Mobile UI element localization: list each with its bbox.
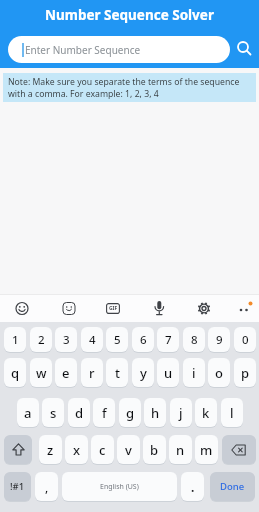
staticText: v xyxy=(125,441,132,459)
button[interactable]: 3 xyxy=(55,327,77,352)
staticText: Enter Number Sequence xyxy=(25,43,141,57)
button[interactable]: 6 xyxy=(132,327,154,352)
staticText: l xyxy=(230,404,234,422)
button[interactable] xyxy=(236,40,253,57)
staticText: q xyxy=(11,364,20,382)
button[interactable]: 4 xyxy=(81,327,103,352)
staticText: . xyxy=(191,479,195,495)
button[interactable]: 9 xyxy=(208,327,230,352)
button[interactable]: 8 xyxy=(183,327,205,352)
button[interactable]: s xyxy=(42,398,64,427)
button[interactable]: 2 xyxy=(30,327,52,352)
staticText: , xyxy=(45,479,49,495)
button[interactable]: q xyxy=(4,358,26,387)
button[interactable]: , xyxy=(35,472,58,501)
button[interactable]: 5 xyxy=(106,327,128,352)
button[interactable]: a xyxy=(17,398,39,427)
staticText: 2 xyxy=(38,332,45,348)
button[interactable]: x xyxy=(65,435,88,464)
staticText: g xyxy=(126,404,135,422)
button[interactable]: 1 xyxy=(4,327,26,352)
staticText: x xyxy=(73,441,81,459)
staticText: o xyxy=(215,364,223,382)
button[interactable]: o xyxy=(208,358,230,387)
button[interactable] xyxy=(4,435,32,464)
staticText: p xyxy=(241,364,250,382)
button[interactable]: z xyxy=(39,435,62,464)
staticText: a xyxy=(24,404,32,422)
staticText: w xyxy=(36,364,47,382)
button[interactable]: i xyxy=(183,358,205,387)
button[interactable]: d xyxy=(68,398,90,427)
staticText: 4 xyxy=(89,332,96,348)
button[interactable]: p xyxy=(234,358,256,387)
button[interactable]: w xyxy=(30,358,52,387)
staticText: n xyxy=(176,441,185,459)
button[interactable]: n xyxy=(169,435,192,464)
staticText: Done xyxy=(220,480,245,493)
button[interactable]: . xyxy=(181,472,204,501)
staticText: b xyxy=(150,441,159,459)
staticText: 1 xyxy=(12,332,19,348)
staticText: u xyxy=(164,364,173,382)
button[interactable]: y xyxy=(132,358,154,387)
staticText: 3 xyxy=(63,332,70,348)
staticText: i xyxy=(192,364,196,382)
button[interactable]: k xyxy=(195,398,217,427)
staticText: 5 xyxy=(114,332,121,348)
button[interactable]: l xyxy=(221,398,243,427)
button[interactable]: !#1 xyxy=(4,472,31,501)
staticText: y xyxy=(140,364,147,382)
button[interactable]: h xyxy=(144,398,166,427)
button[interactable]: English (US) xyxy=(62,472,177,501)
staticText: s xyxy=(50,404,57,422)
staticText: j xyxy=(179,404,183,422)
button[interactable]: v xyxy=(117,435,140,464)
staticText: 8 xyxy=(191,332,198,348)
button[interactable]: b xyxy=(143,435,166,464)
staticText: r xyxy=(89,364,95,382)
staticText: GIF xyxy=(109,305,118,312)
button[interactable]: GIF xyxy=(106,303,120,314)
staticText: m xyxy=(200,441,213,459)
button[interactable]: 0 xyxy=(234,327,256,352)
staticText: 6 xyxy=(140,332,147,348)
staticText: 0 xyxy=(242,332,249,348)
staticText: !#1 xyxy=(10,480,25,493)
button[interactable]: t xyxy=(106,358,128,387)
button[interactable]: u xyxy=(157,358,179,387)
button[interactable]: m xyxy=(195,435,218,464)
button[interactable]: Enter Number Sequence xyxy=(8,36,230,63)
button[interactable]: r xyxy=(81,358,103,387)
staticText: 9 xyxy=(216,332,223,348)
button[interactable]: Done xyxy=(210,472,255,501)
staticText: 7 xyxy=(165,332,172,348)
staticText: Note: Make sure you separate the terms o… xyxy=(8,76,240,100)
staticText: English (US) xyxy=(100,482,139,492)
button[interactable]: e xyxy=(55,358,77,387)
staticText: h xyxy=(151,404,160,422)
staticText: c xyxy=(99,441,106,459)
button[interactable] xyxy=(222,435,256,464)
staticText: f xyxy=(102,404,107,422)
button[interactable]: g xyxy=(119,398,141,427)
button[interactable]: j xyxy=(170,398,192,427)
staticText: z xyxy=(47,441,54,459)
button[interactable]: f xyxy=(93,398,115,427)
button[interactable]: c xyxy=(91,435,114,464)
staticText: e xyxy=(62,364,70,382)
staticText: k xyxy=(202,404,210,422)
staticText: Number Sequence Solver xyxy=(45,6,214,24)
staticText: d xyxy=(75,404,84,422)
staticText: t xyxy=(115,364,120,382)
button[interactable]: 7 xyxy=(157,327,179,352)
